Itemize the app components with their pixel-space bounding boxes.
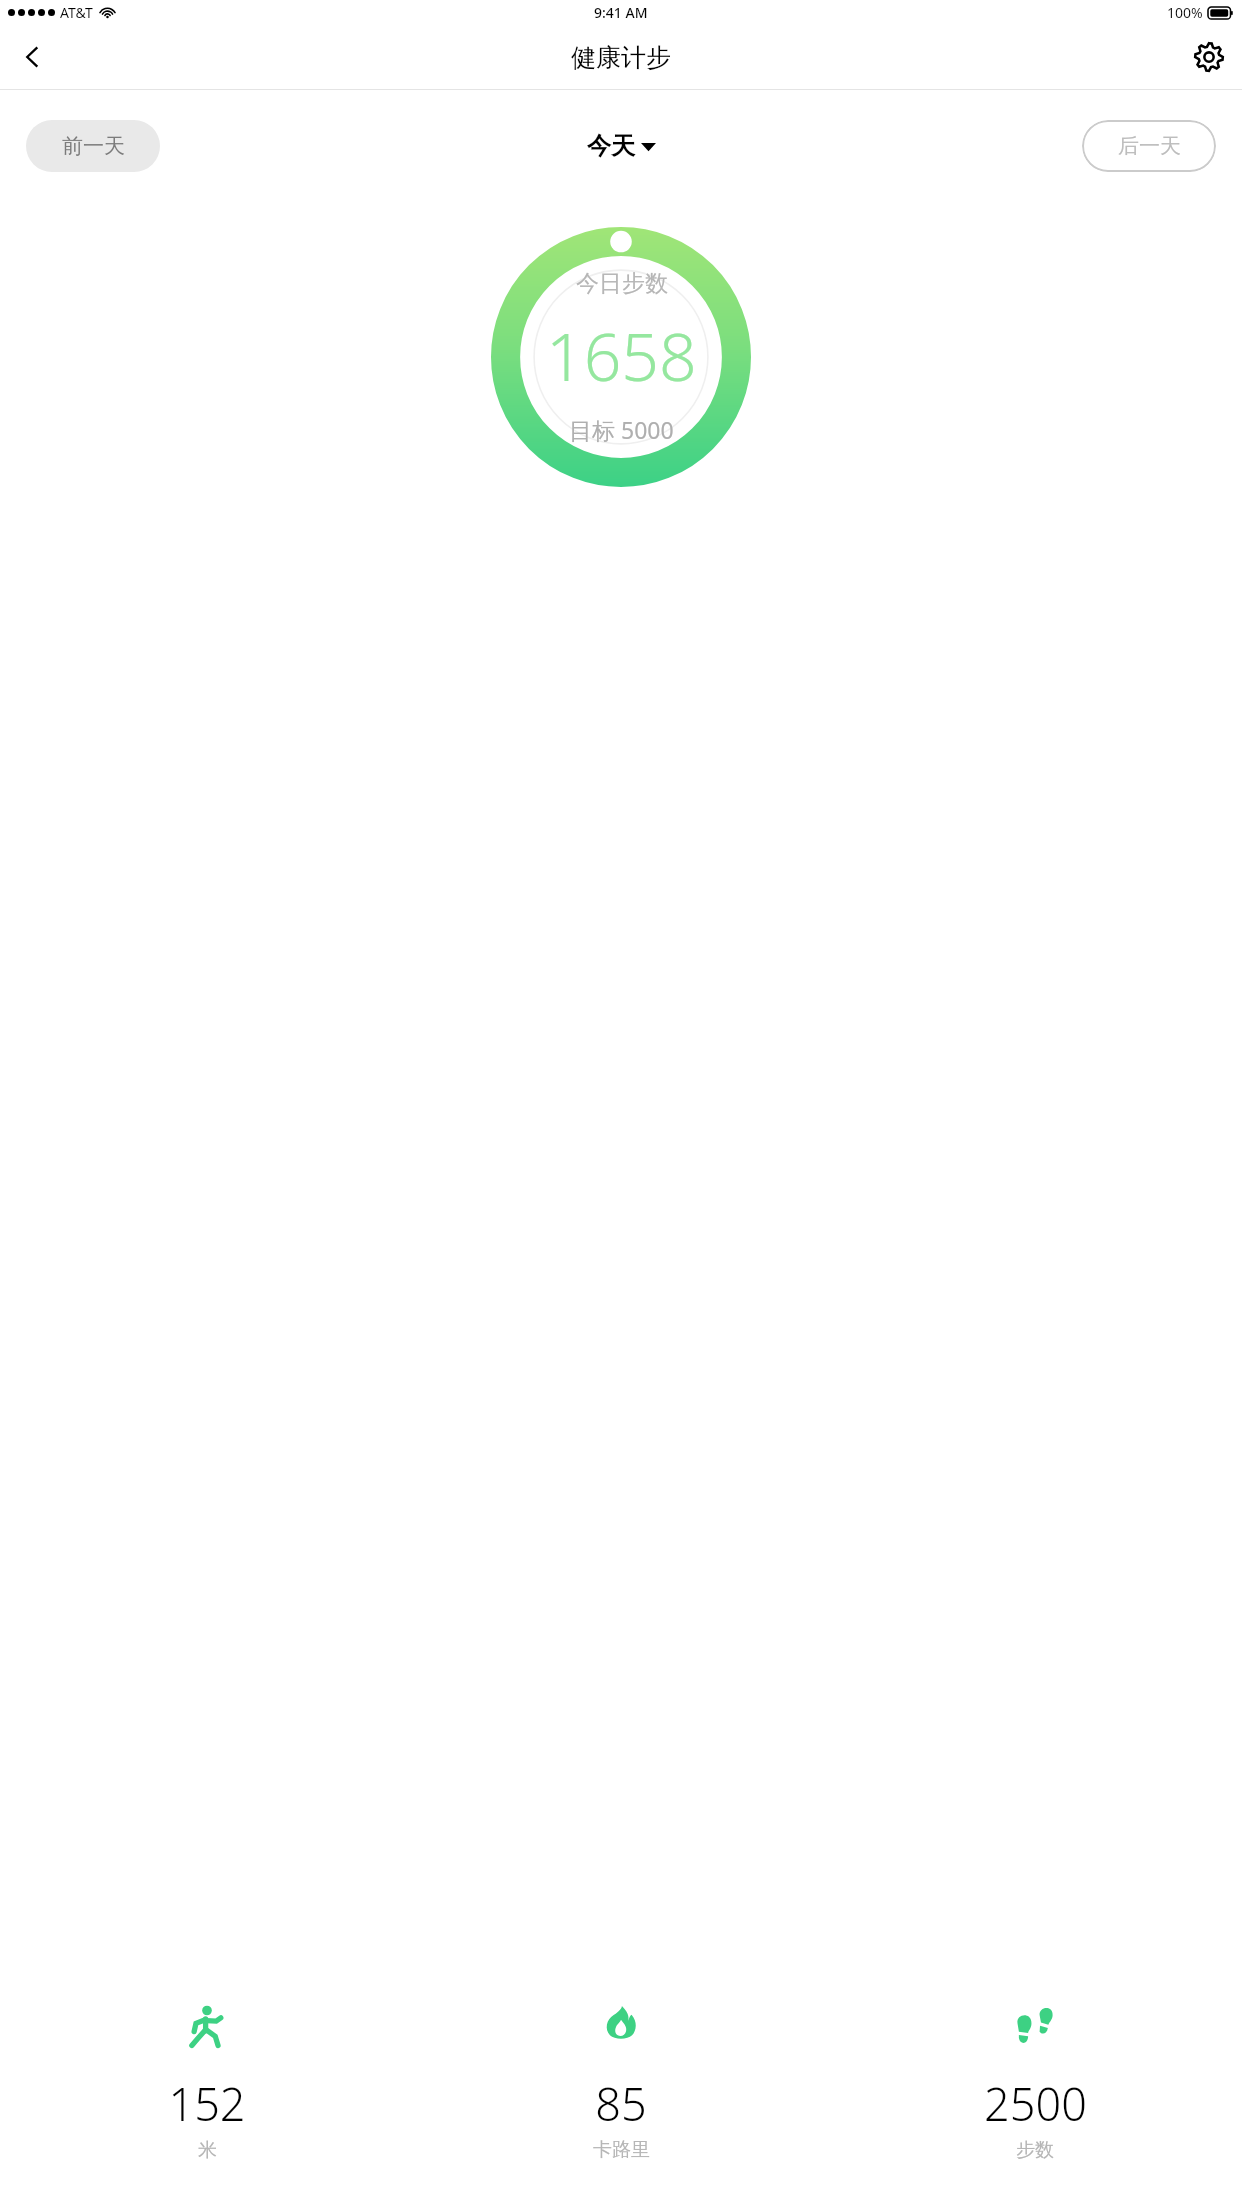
staticText: 卡路里 <box>593 2138 650 2162</box>
staticText: AT&T <box>60 3 93 22</box>
button[interactable]: 后一天 <box>1082 120 1216 172</box>
staticText: 85 <box>595 2073 647 2134</box>
button[interactable]: Settings <box>1176 24 1242 90</box>
button[interactable]: 152 <box>0 2005 414 2162</box>
staticText: 步数 <box>1016 2138 1054 2162</box>
staticText: 目标 5000 <box>569 414 674 445</box>
staticText: 9:41 AM <box>594 3 648 22</box>
staticText: 健康计步 <box>571 42 671 73</box>
button[interactable]: 2500 <box>828 2005 1242 2162</box>
button[interactable]: Back <box>0 24 66 90</box>
staticText: 今天 <box>587 131 635 161</box>
staticText: 1658 <box>546 310 697 400</box>
staticText: 今日步数 <box>576 269 668 298</box>
staticText: 100% <box>1167 3 1203 22</box>
staticText: 2500 <box>984 2073 1087 2134</box>
button[interactable]: 今天 <box>579 123 664 169</box>
staticText: 米 <box>198 2138 217 2162</box>
button[interactable]: 前一天 <box>26 120 160 172</box>
button[interactable]: 85 <box>414 2005 828 2162</box>
staticText: 152 <box>168 2073 246 2134</box>
staticText: 后一天 <box>1118 133 1181 159</box>
staticText: 前一天 <box>62 133 125 159</box>
